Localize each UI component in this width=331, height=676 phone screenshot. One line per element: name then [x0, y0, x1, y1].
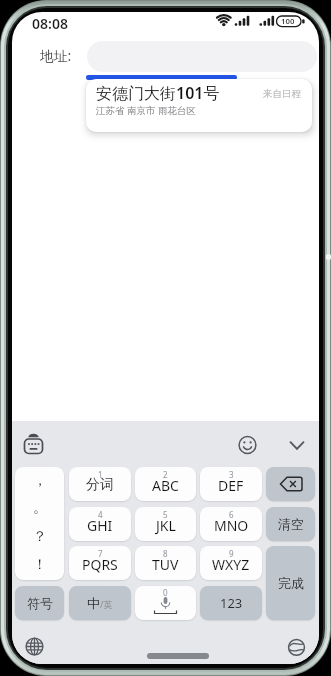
button[interactable]: 1 [69, 467, 131, 501]
staticText: 6 [229, 509, 234, 520]
button[interactable]: 5 [135, 507, 196, 541]
button[interactable]: 中/英 [69, 586, 131, 620]
button[interactable]: 123 [200, 586, 262, 620]
button[interactable]: 清空 [266, 507, 315, 541]
button[interactable] [266, 467, 315, 501]
staticText: JKL [156, 516, 176, 535]
staticText: 1 [98, 469, 103, 480]
staticText: 江苏省 南京市 雨花台区 [96, 104, 196, 117]
button[interactable]: 0 [135, 586, 196, 620]
button[interactable] [236, 434, 259, 457]
staticText: 4 [98, 509, 103, 520]
staticText: 5 [163, 509, 168, 520]
staticText: WXYZ [212, 555, 250, 574]
staticText: ABC [152, 476, 179, 495]
button[interactable]: 安德门大街101号 [86, 79, 312, 132]
staticText: 8 [163, 548, 168, 559]
button[interactable] [22, 432, 46, 456]
staticText: 3 [229, 469, 234, 480]
staticText: 安德门大街101号 [96, 82, 220, 104]
staticText: 来自日程 [263, 88, 301, 100]
staticText: 7 [98, 548, 103, 559]
staticText: 清空 [278, 516, 304, 532]
button[interactable]: 6 [200, 507, 262, 541]
staticText: 符号 [27, 595, 53, 611]
staticText: 2 [163, 469, 168, 480]
staticText: DEF [218, 476, 244, 495]
staticText: 中/英 [87, 595, 113, 611]
staticText: ， [33, 472, 47, 490]
staticText: PQRS [82, 555, 118, 574]
button[interactable]: ， [15, 467, 64, 580]
staticText: 9 [229, 548, 234, 559]
button[interactable]: 9 [200, 546, 262, 580]
staticText: TUV [152, 555, 179, 574]
staticText: 100 [281, 16, 295, 27]
staticText: 地址: [40, 46, 72, 65]
button[interactable]: 7 [69, 546, 131, 580]
staticText: 完成 [278, 575, 304, 591]
button[interactable]: 3 [200, 467, 262, 501]
button[interactable] [288, 434, 309, 455]
staticText: 分词 [86, 476, 114, 494]
staticText: GHI [87, 516, 113, 535]
button[interactable]: 8 [135, 546, 196, 580]
button[interactable]: 4 [69, 507, 131, 541]
staticText: ？ [33, 528, 47, 546]
button[interactable]: 符号 [15, 586, 64, 620]
button[interactable] [285, 636, 308, 659]
staticText: 0 [163, 587, 168, 598]
staticText: 。 [33, 499, 47, 517]
staticText: MNO [214, 516, 249, 535]
staticText: 123 [220, 594, 243, 612]
staticText: 08:08 [32, 14, 68, 33]
button[interactable]: 完成 [266, 546, 315, 620]
button[interactable] [23, 635, 46, 658]
staticText: ！ [33, 556, 47, 574]
button[interactable]: 2 [135, 467, 196, 501]
